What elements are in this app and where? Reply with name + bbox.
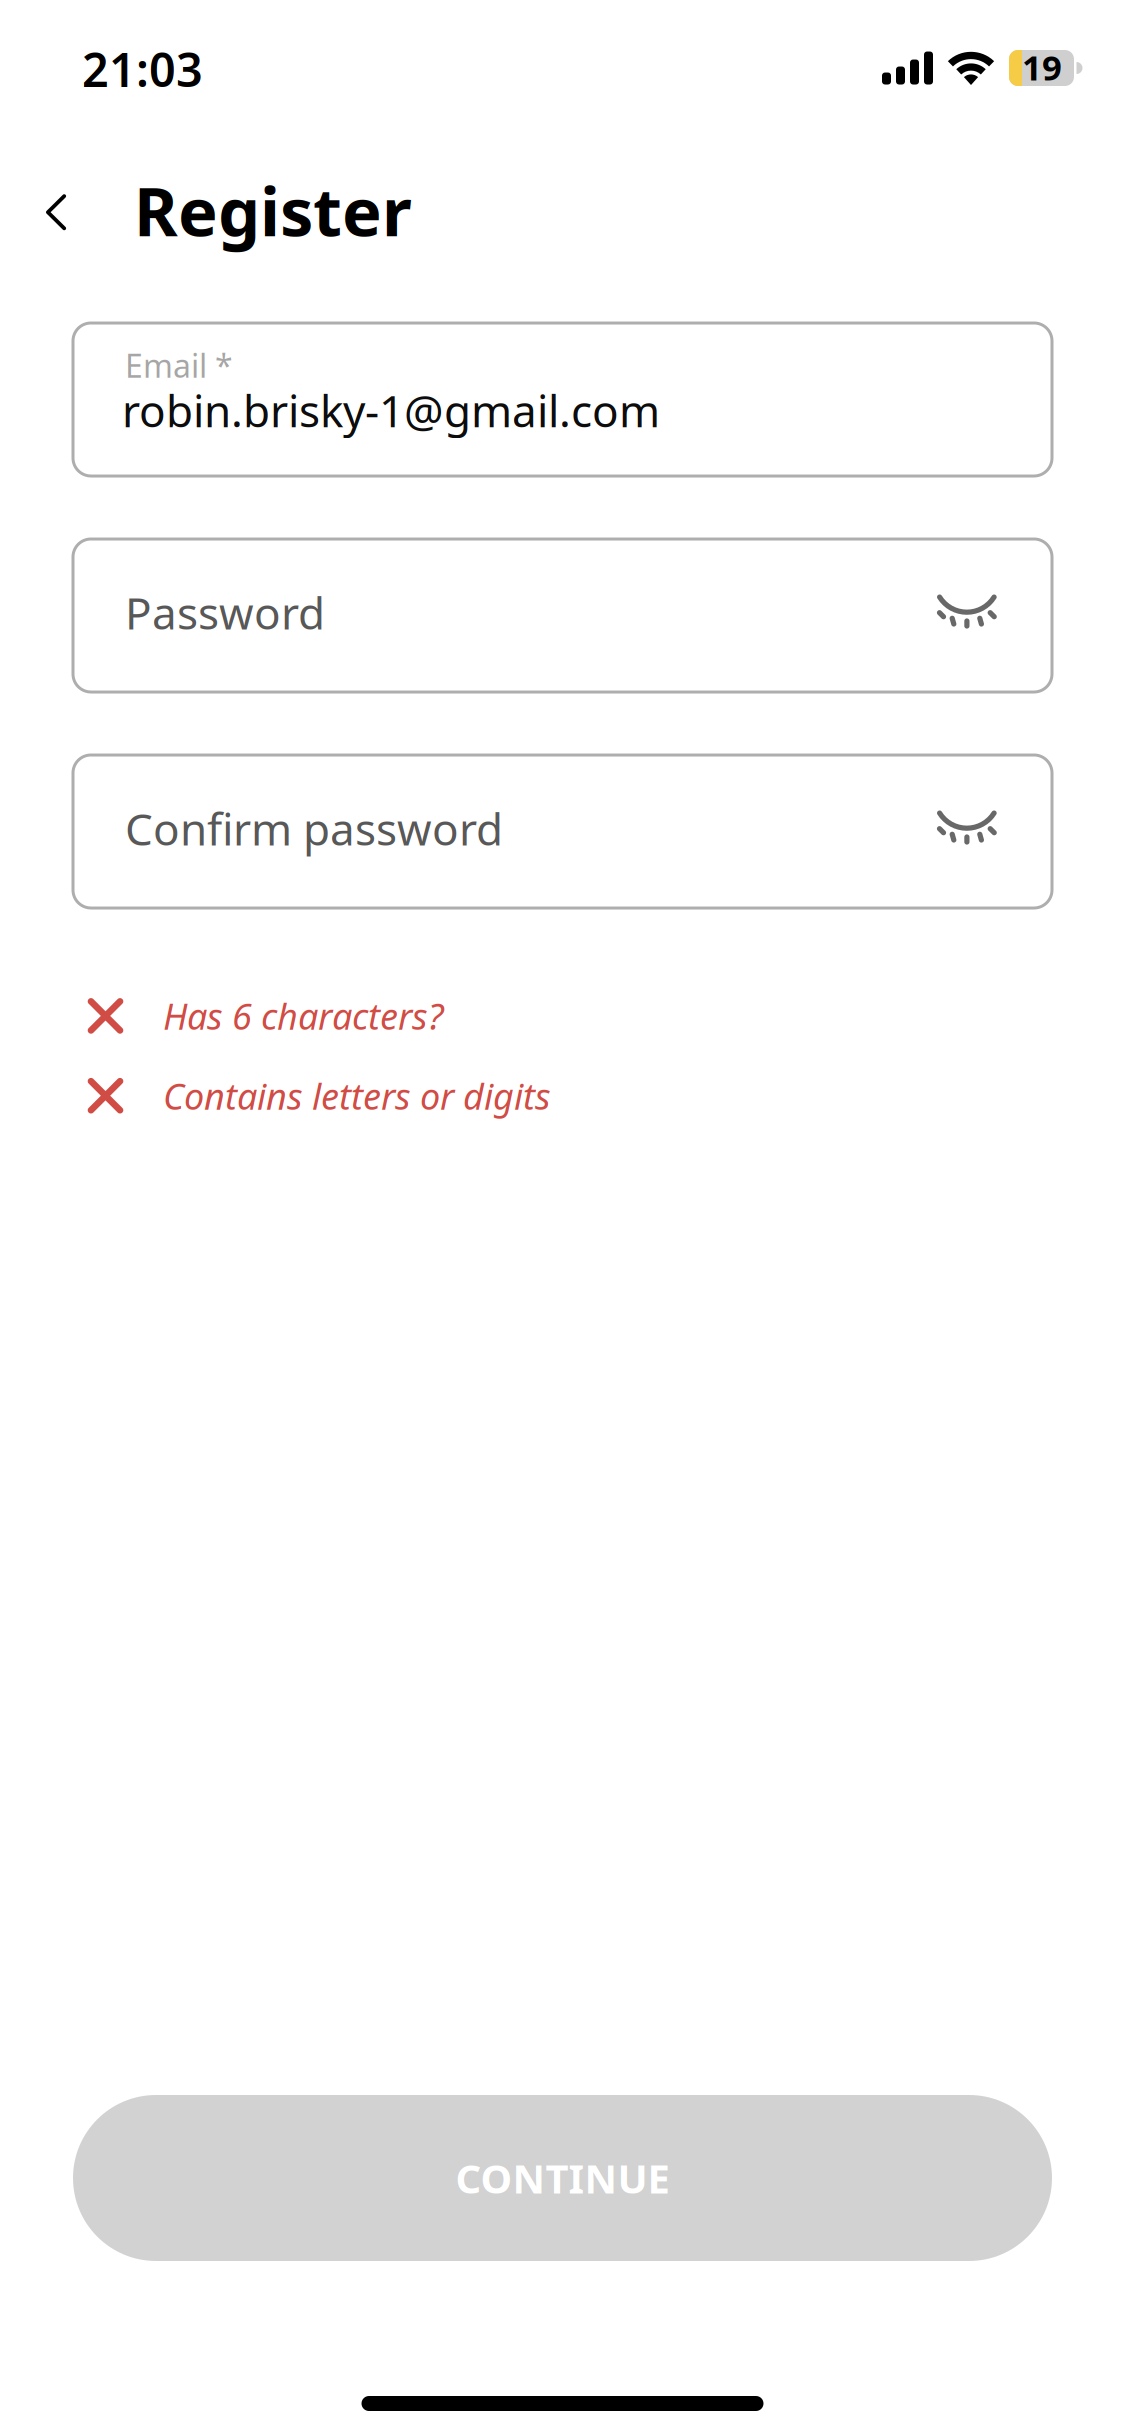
- button[interactable]: Email *: [73, 323, 1052, 476]
- staticText: Contains letters or digits: [163, 1072, 551, 1120]
- staticText: Confirm password: [125, 799, 503, 858]
- button[interactable]: Show Confirm password: [939, 814, 999, 848]
- button[interactable]: Back: [22, 170, 90, 254]
- button[interactable]: Confirm password: [73, 755, 1052, 908]
- button[interactable]: CONTINUE: [73, 2095, 1052, 2261]
- button[interactable]: Password: [73, 539, 1052, 692]
- staticText: Password: [125, 583, 325, 642]
- staticText: CONTINUE: [455, 2151, 669, 2204]
- staticText: 19: [1022, 44, 1062, 90]
- staticText: Register: [134, 166, 412, 255]
- staticText: Has 6 characters?: [163, 992, 443, 1040]
- staticText: robin.brisky-1@gmail.com: [122, 381, 660, 439]
- button[interactable]: Show Password: [939, 598, 999, 632]
- staticText: 21:03: [82, 38, 203, 100]
- staticText: Email *: [125, 344, 233, 386]
